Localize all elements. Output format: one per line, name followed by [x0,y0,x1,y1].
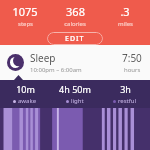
staticText: restful [118,97,137,105]
button[interactable]: 4h 50m [50,83,100,105]
staticText: 7:50 [122,51,142,65]
button[interactable]: Sleep [0,45,150,80]
staticText: 368 [66,4,85,19]
staticText: miles [118,20,133,28]
staticText: EDIT [65,34,85,44]
staticText: 3h [120,83,131,95]
staticText: Sleep [30,51,56,65]
button[interactable]: EDIT [47,32,103,45]
staticText: 10m [16,83,35,95]
other: Sleep [7,54,24,71]
button[interactable]: .3 [100,4,150,28]
staticText: hours [124,66,141,74]
button[interactable]: 368 [50,4,100,28]
staticText: .3 [120,4,130,19]
staticText: 1075 [12,4,38,19]
staticText: steps [18,20,33,28]
button[interactable]: 1075 [0,4,50,28]
staticText: 10:00pm – 6:00am [30,66,82,74]
button[interactable]: 3h [100,83,150,105]
staticText: awake [18,97,37,105]
staticText: calories [64,20,86,28]
button[interactable]: 10m [0,83,50,105]
staticText: light [71,97,84,105]
staticText: 4h 50m [59,83,91,95]
